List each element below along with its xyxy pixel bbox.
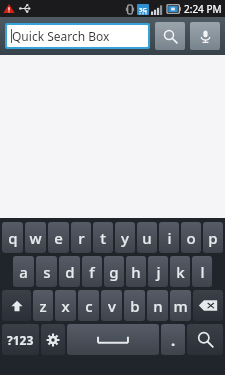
staticText: a [19, 262, 28, 282]
button[interactable]: Space [67, 324, 159, 355]
button[interactable]: x [55, 290, 76, 321]
button[interactable]: l [192, 256, 212, 287]
button[interactable]: Search [155, 22, 185, 50]
staticText: r [78, 228, 85, 248]
staticText: z [39, 296, 47, 316]
button[interactable]: q [2, 222, 23, 253]
staticText: l [200, 262, 205, 282]
staticText: Quick Search Box [12, 28, 110, 44]
button[interactable]: Input settings [41, 324, 65, 355]
button[interactable]: h [126, 256, 146, 287]
staticText: u [142, 228, 152, 248]
button[interactable]: u [137, 222, 157, 253]
button[interactable]: m [170, 290, 191, 321]
button[interactable]: b [124, 290, 145, 321]
staticText: s [43, 262, 51, 282]
staticText: b [130, 296, 140, 316]
button[interactable]: v [101, 290, 122, 321]
staticText: k [176, 262, 185, 282]
staticText: 3G [139, 6, 147, 14]
staticText: p [208, 228, 218, 248]
staticText: n [153, 296, 163, 316]
button[interactable]: p [203, 222, 223, 253]
button[interactable]: j [148, 256, 168, 287]
button[interactable]: i [159, 222, 179, 253]
staticText: x [61, 296, 70, 316]
button[interactable]: f [82, 256, 102, 287]
staticText: i [167, 228, 172, 248]
staticText: q [8, 228, 18, 248]
button[interactable]: g [104, 256, 124, 287]
button[interactable]: Search [187, 324, 223, 355]
staticText: d [65, 262, 75, 282]
button[interactable]: . [161, 324, 185, 355]
button[interactable]: r [71, 222, 91, 253]
button[interactable]: a [13, 256, 34, 287]
button[interactable]: z [33, 290, 53, 321]
button[interactable]: n [147, 290, 168, 321]
staticText: w [29, 228, 42, 248]
button[interactable]: Symbols [2, 324, 39, 355]
staticText: c [85, 296, 93, 316]
staticText: f [89, 262, 95, 282]
button[interactable]: d [59, 256, 80, 287]
button[interactable]: e [48, 222, 69, 253]
staticText: h [131, 262, 141, 282]
button[interactable]: Quick Search Box [7, 25, 148, 47]
staticText: o [186, 228, 196, 248]
button[interactable]: o [181, 222, 201, 253]
button[interactable]: s [36, 256, 57, 287]
staticText: t [100, 228, 106, 248]
staticText: v [108, 296, 116, 316]
button[interactable]: k [170, 256, 190, 287]
button[interactable]: Voice search [190, 22, 220, 50]
staticText: . [171, 330, 176, 350]
staticText: 2:24 PM [184, 2, 222, 16]
button[interactable]: c [78, 290, 99, 321]
staticText: j [156, 262, 161, 282]
button[interactable]: w [25, 222, 46, 253]
button[interactable]: t [93, 222, 113, 253]
staticText: ?123 [7, 332, 34, 348]
staticText: m [173, 296, 188, 316]
button[interactable]: y [115, 222, 135, 253]
staticText: e [54, 228, 63, 248]
button[interactable]: Backspace [193, 290, 223, 321]
staticText: g [109, 262, 119, 282]
staticText: y [121, 228, 129, 248]
button[interactable]: Shift [2, 290, 31, 321]
